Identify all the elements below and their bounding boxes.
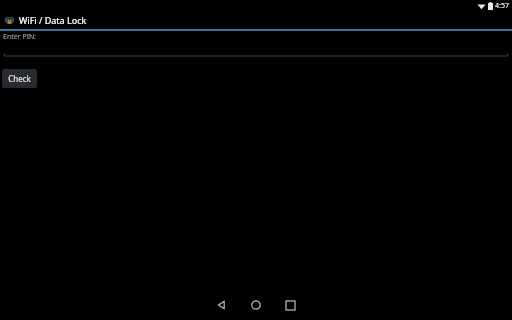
- button[interactable]: Check: [2, 69, 37, 88]
- button[interactable]: PIN entry field: [4, 51, 508, 57]
- staticText: Check: [8, 73, 31, 84]
- staticText: Enter PIN:: [3, 32, 37, 42]
- button[interactable]: WiFi / Data Lock: [0, 11, 512, 29]
- staticText: WiFi / Data Lock: [19, 14, 87, 26]
- staticText: 4:57: [495, 1, 509, 11]
- button[interactable]: Home: [239, 290, 273, 320]
- button[interactable]: Back: [205, 290, 239, 320]
- button[interactable]: Recent apps: [273, 290, 307, 320]
